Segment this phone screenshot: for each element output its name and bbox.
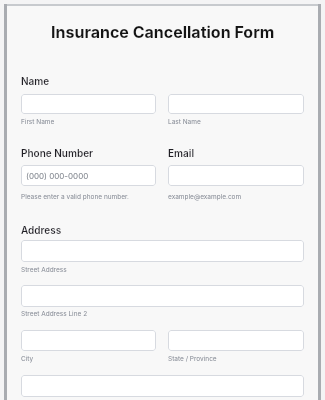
staticText: Insurance Cancellation Form [51, 22, 275, 41]
staticText: Street Address [21, 266, 67, 274]
staticText: Last Name [168, 118, 201, 126]
staticText: Please enter a valid phone number. [21, 193, 129, 201]
button[interactable] [21, 375, 304, 397]
button[interactable] [168, 330, 304, 351]
button[interactable] [21, 240, 304, 262]
button[interactable] [21, 330, 156, 351]
staticText: Name [21, 75, 50, 87]
staticText: example@example.com [168, 193, 242, 201]
staticText: Street Address Line 2 [21, 310, 88, 318]
staticText: Phone Number [21, 147, 94, 159]
button[interactable]: (000) 000-0000 [21, 165, 156, 186]
button[interactable] [168, 94, 304, 114]
button[interactable] [168, 165, 304, 186]
staticText: (000) 000-0000 [26, 171, 89, 181]
staticText: Address [21, 224, 62, 236]
button[interactable] [21, 285, 304, 307]
staticText: Email [168, 147, 195, 159]
staticText: City [21, 355, 34, 363]
button[interactable] [21, 94, 156, 114]
staticText: State / Province [168, 355, 217, 363]
staticText: First Name [21, 118, 55, 126]
